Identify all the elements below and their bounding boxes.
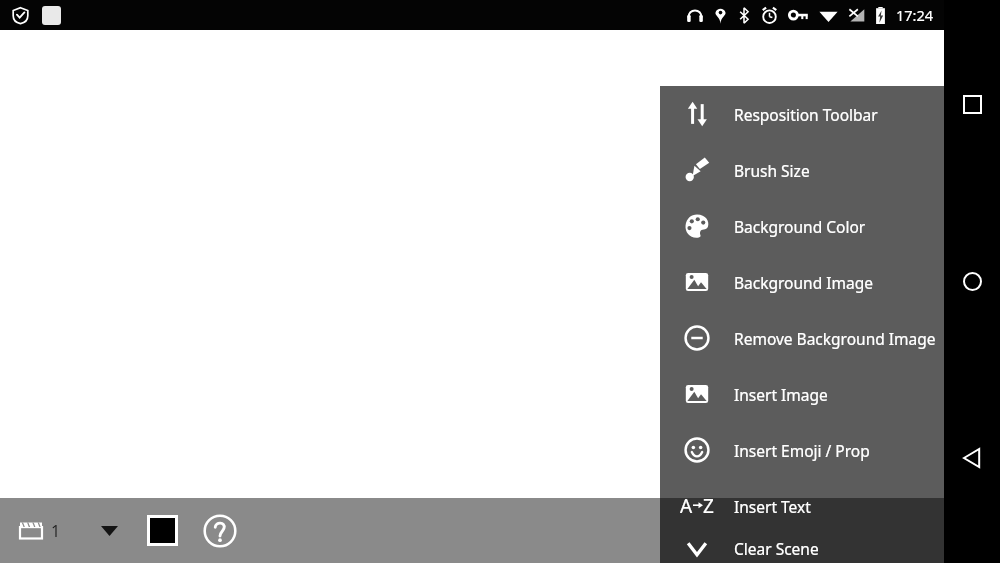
button[interactable]: Scene 1 [20,498,61,563]
button[interactable]: A [660,478,944,534]
button[interactable]: Resposition Toolbar [660,86,944,142]
button[interactable]: Insert Emoji / Prop [660,422,944,478]
button[interactable]: Back [944,430,1000,486]
staticText: 17:24 [896,5,934,25]
staticText: 1 [51,520,61,542]
button[interactable]: Clear Scene [660,534,944,563]
staticText: Resposition Toolbar [734,104,878,125]
staticText: Background Image [734,272,873,293]
staticText: solution [933,429,991,449]
button[interactable]: Recents [944,76,1000,132]
staticText: Background Color [734,216,866,237]
button[interactable] [0,30,944,498]
staticText: APP [939,396,986,429]
staticText: Insert Emoji / Prop [734,440,870,461]
button[interactable]: Help [200,511,240,551]
staticText: A [680,493,693,519]
staticText: Brush Size [734,160,810,181]
button[interactable]: Brush Size [660,142,944,198]
staticText: Z [703,493,714,519]
staticText: Insert Text [734,496,811,517]
staticText: Clear Scene [734,538,819,559]
button[interactable]: Choose scene [89,511,129,551]
button[interactable]: Undo [702,505,754,557]
button[interactable]: Background Color [660,198,944,254]
button[interactable]: Remove Background Image [660,310,944,366]
staticText: Remove Background Image [734,328,936,349]
button[interactable]: Background Image [660,254,944,310]
staticText: Insert Image [734,384,828,405]
button[interactable]: Redo [760,505,812,557]
button[interactable]: Insert Image [660,366,944,422]
button[interactable]: Home [944,253,1000,309]
